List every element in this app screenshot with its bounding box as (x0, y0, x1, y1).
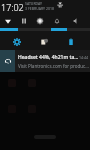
button[interactable]: Wi-Fi (1, 12, 15, 26)
button[interactable]: Brightness (0, 26, 90, 33)
button[interactable]: Headset 44%, 4h21m tal... (0, 50, 90, 72)
staticText: 14:44 (79, 55, 88, 60)
staticText: 3 FEBRUARY 2018 (25, 6, 54, 11)
button[interactable]: Do not disturb (50, 12, 64, 26)
button[interactable]: Sound (69, 12, 83, 26)
staticText: Headset 44%, 4h21m tal... (18, 54, 79, 61)
button[interactable]: Notification (38, 35, 52, 49)
staticText: 17:02 (1, 1, 24, 13)
staticText: SATURDAY (25, 1, 43, 6)
staticText: Visit Plantronics.com for product su... (18, 63, 90, 69)
button[interactable]: Battery (64, 35, 78, 49)
button[interactable]: Cellular data (17, 12, 31, 26)
button[interactable]: Auto brightness (33, 12, 47, 26)
button[interactable]: Settings (10, 35, 24, 49)
